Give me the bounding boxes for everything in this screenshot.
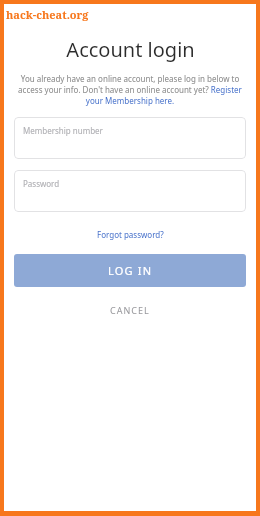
button[interactable]: Membership number — [14, 117, 246, 159]
staticText: Password — [23, 178, 60, 189]
button[interactable]: LOG IN — [14, 254, 246, 287]
staticText: Membership number — [23, 125, 103, 136]
staticText: hack-cheat.org — [6, 7, 89, 22]
staticText: CANCEL — [110, 304, 150, 316]
staticText: Account login — [66, 36, 195, 63]
staticText: Forgot password? — [97, 229, 164, 240]
button[interactable]: Forgot password? — [91, 226, 170, 243]
staticText: You already have an online account, plea… — [14, 73, 246, 106]
button[interactable]: CANCEL — [100, 299, 160, 321]
button[interactable]: Password — [14, 170, 246, 212]
staticText: LOG IN — [108, 263, 153, 278]
